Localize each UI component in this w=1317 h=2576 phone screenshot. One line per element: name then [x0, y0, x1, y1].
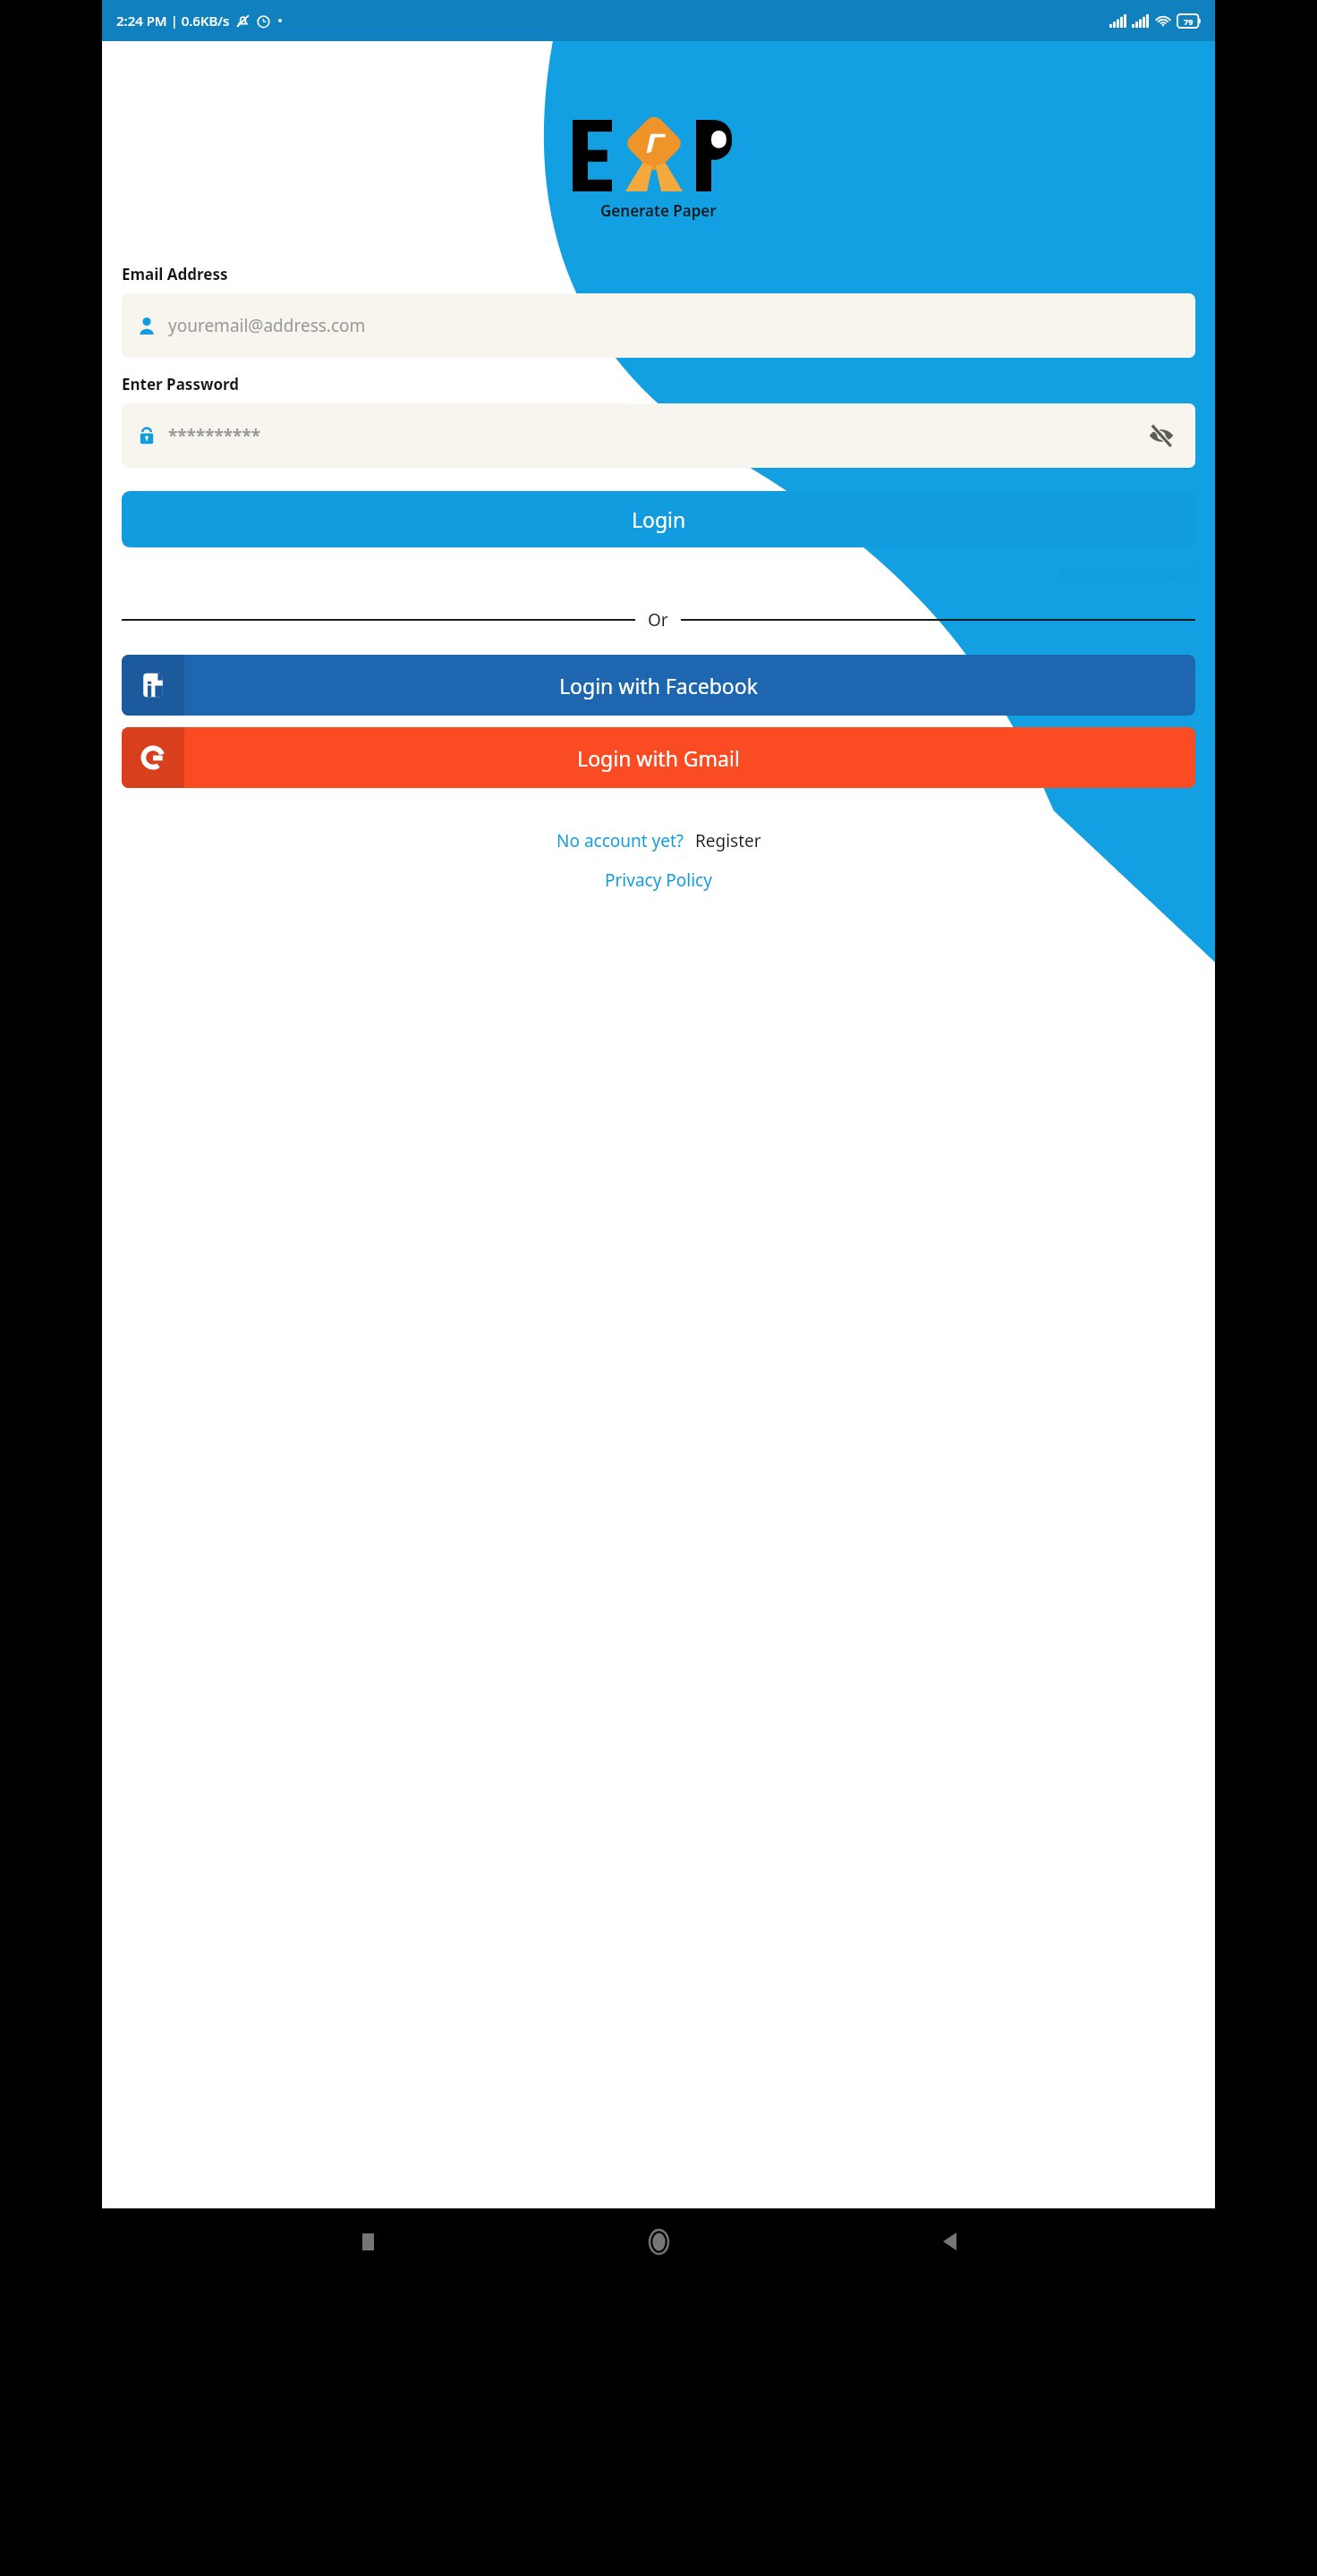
- button[interactable]: Register: [695, 826, 761, 856]
- button[interactable]: Privacy Policy: [605, 865, 712, 895]
- button[interactable]: Recent apps: [343, 2216, 393, 2267]
- button[interactable]: Show password: [1143, 418, 1179, 453]
- button[interactable]: Login with Facebook: [122, 655, 1195, 716]
- staticText: Login: [632, 505, 686, 533]
- button[interactable]: No account yet?: [557, 826, 684, 856]
- staticText: Email Address: [122, 264, 228, 284]
- staticText: Generate Paper: [600, 200, 717, 221]
- staticText: Enter Password: [122, 374, 240, 394]
- button[interactable]: **********: [122, 403, 1195, 468]
- staticText: Login with Facebook: [559, 672, 758, 699]
- button[interactable]: Login: [122, 491, 1195, 547]
- button[interactable]: Home: [633, 2216, 684, 2267]
- staticText: Or: [648, 608, 668, 631]
- staticText: 79: [1184, 16, 1194, 27]
- staticText: Login with Gmail: [577, 744, 740, 772]
- staticText: youremail@address.com: [168, 314, 366, 337]
- button[interactable]: Login with Gmail: [122, 727, 1195, 788]
- staticText: 2:24 PM | 0.6KB/s: [116, 12, 230, 30]
- staticText: **********: [168, 424, 260, 447]
- button[interactable]: youremail@address.com: [122, 293, 1195, 358]
- button[interactable]: Back: [924, 2216, 974, 2267]
